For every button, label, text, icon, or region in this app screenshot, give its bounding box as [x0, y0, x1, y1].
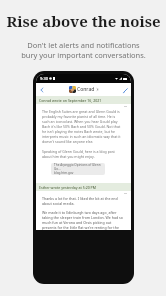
button[interactable]: The Arpeggio Opinions of Glenn Go... blo…	[51, 163, 105, 175]
staticText: Conrad wrote on September 16, 2021	[39, 98, 102, 103]
button[interactable]: Compose	[120, 85, 130, 95]
staticText: 9:30	[40, 76, 48, 81]
staticText: Speaking of Glenn Gould, here is a blog …	[42, 149, 115, 159]
staticText: We made it to Edinburgh two days ago, af…	[42, 210, 123, 230]
staticText: Rise above the noise	[6, 11, 161, 31]
staticText: The English Suites are great and Glenn G…	[42, 109, 121, 144]
staticText: Thanks a lot for that. I liked the bit a…	[42, 196, 118, 206]
button[interactable]: Conrad	[69, 86, 99, 93]
staticText: Don't let alerts and notifications bury …	[21, 40, 146, 60]
button[interactable]: Conrad wrote on September 16, 2021	[36, 96, 131, 104]
staticText: The Arpeggio Opinions of Glenn Go... blo…	[54, 163, 102, 175]
button[interactable]: Back	[37, 85, 47, 95]
staticText: Conrad	[77, 86, 95, 93]
staticText: Esther wrote yesterday at 5:20 PM	[39, 185, 96, 190]
button[interactable]: Esther wrote yesterday at 5:20 PM	[36, 183, 131, 191]
